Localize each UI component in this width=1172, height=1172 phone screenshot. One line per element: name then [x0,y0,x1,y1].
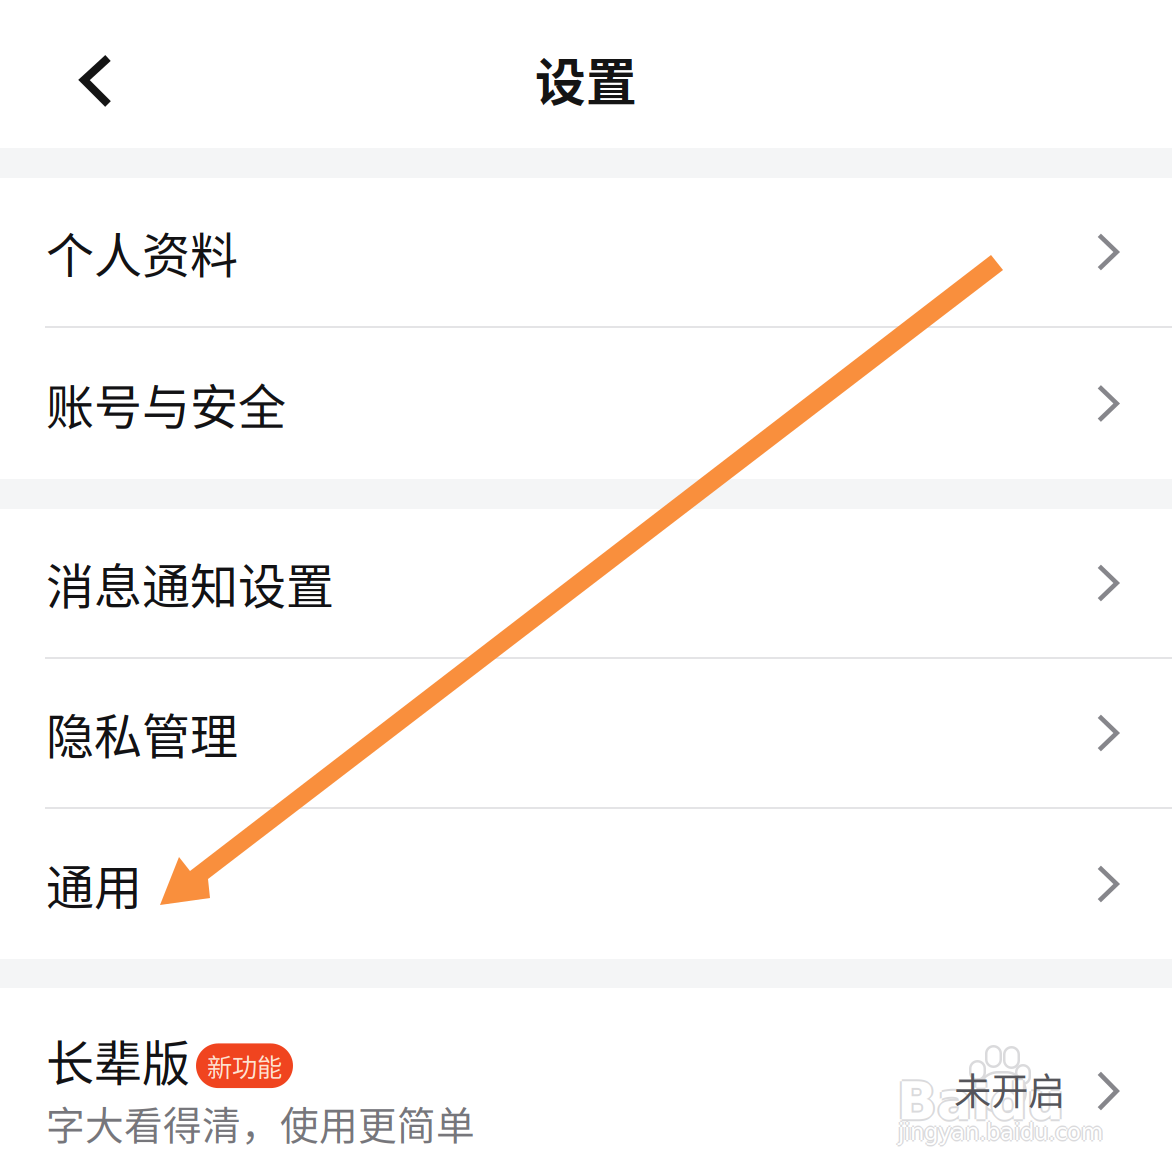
button[interactable]: 个人资料 [0,178,1172,326]
staticText: 字大看得清，使用更简单 [46,1095,475,1151]
staticText: 新功能 [207,1047,282,1084]
staticText: 个人资料 [46,217,238,287]
staticText: 设置 [535,42,637,116]
staticText: 通用 [46,849,142,919]
button[interactable]: Back [0,0,152,148]
staticText: Baidu [899,1071,1066,1131]
staticText: 账号与安全 [46,369,286,438]
staticText: jingyan.baidu.com [898,1119,1103,1145]
staticText: jingyan.baidu.com [898,1120,1103,1147]
staticText: jingyan.baidu.com [899,1119,1104,1145]
staticText: 消息通知设置 [46,548,334,618]
button[interactable]: 账号与安全 [0,328,1172,479]
staticText: 隐私管理 [46,698,238,768]
staticText: jingyan.baidu.com [896,1119,1101,1145]
staticText: Baidu [897,1073,1064,1133]
staticText: 未开启 [954,1062,1065,1116]
staticText: Baidu [895,1071,1062,1131]
button[interactable]: 隐私管理 [0,659,1172,807]
staticText: Baidu [897,1069,1064,1129]
button[interactable]: 长辈版 [0,988,1172,1172]
staticText: jingyan.baidu.com [898,1117,1103,1144]
staticText: 长辈版 [46,1025,190,1094]
button[interactable]: 通用 [0,809,1172,959]
button[interactable]: 消息通知设置 [0,509,1172,657]
staticText: Baidu [897,1071,1064,1131]
